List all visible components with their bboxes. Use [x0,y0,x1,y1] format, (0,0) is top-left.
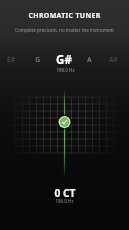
staticText: CHROMATIC TUNER [0,11,129,21]
staticText: G# [56,52,72,68]
staticText: 196.0 Hz [55,198,74,204]
button[interactable]: E# [0,49,31,69]
staticText: G [35,55,40,64]
button[interactable]: A [69,49,109,69]
button[interactable]: A# [93,49,129,69]
staticText: A [87,55,92,64]
staticText: Complete precision, no matter the instru… [0,27,129,33]
staticText: 196.0 Hz [56,67,75,73]
button[interactable]: G# [44,50,84,70]
staticText: 0 CT [54,186,76,200]
staticText: E# [7,55,15,64]
staticText: A# [109,55,118,64]
button[interactable]: 196.0 Hz [45,60,85,80]
button[interactable]: G [17,49,57,69]
